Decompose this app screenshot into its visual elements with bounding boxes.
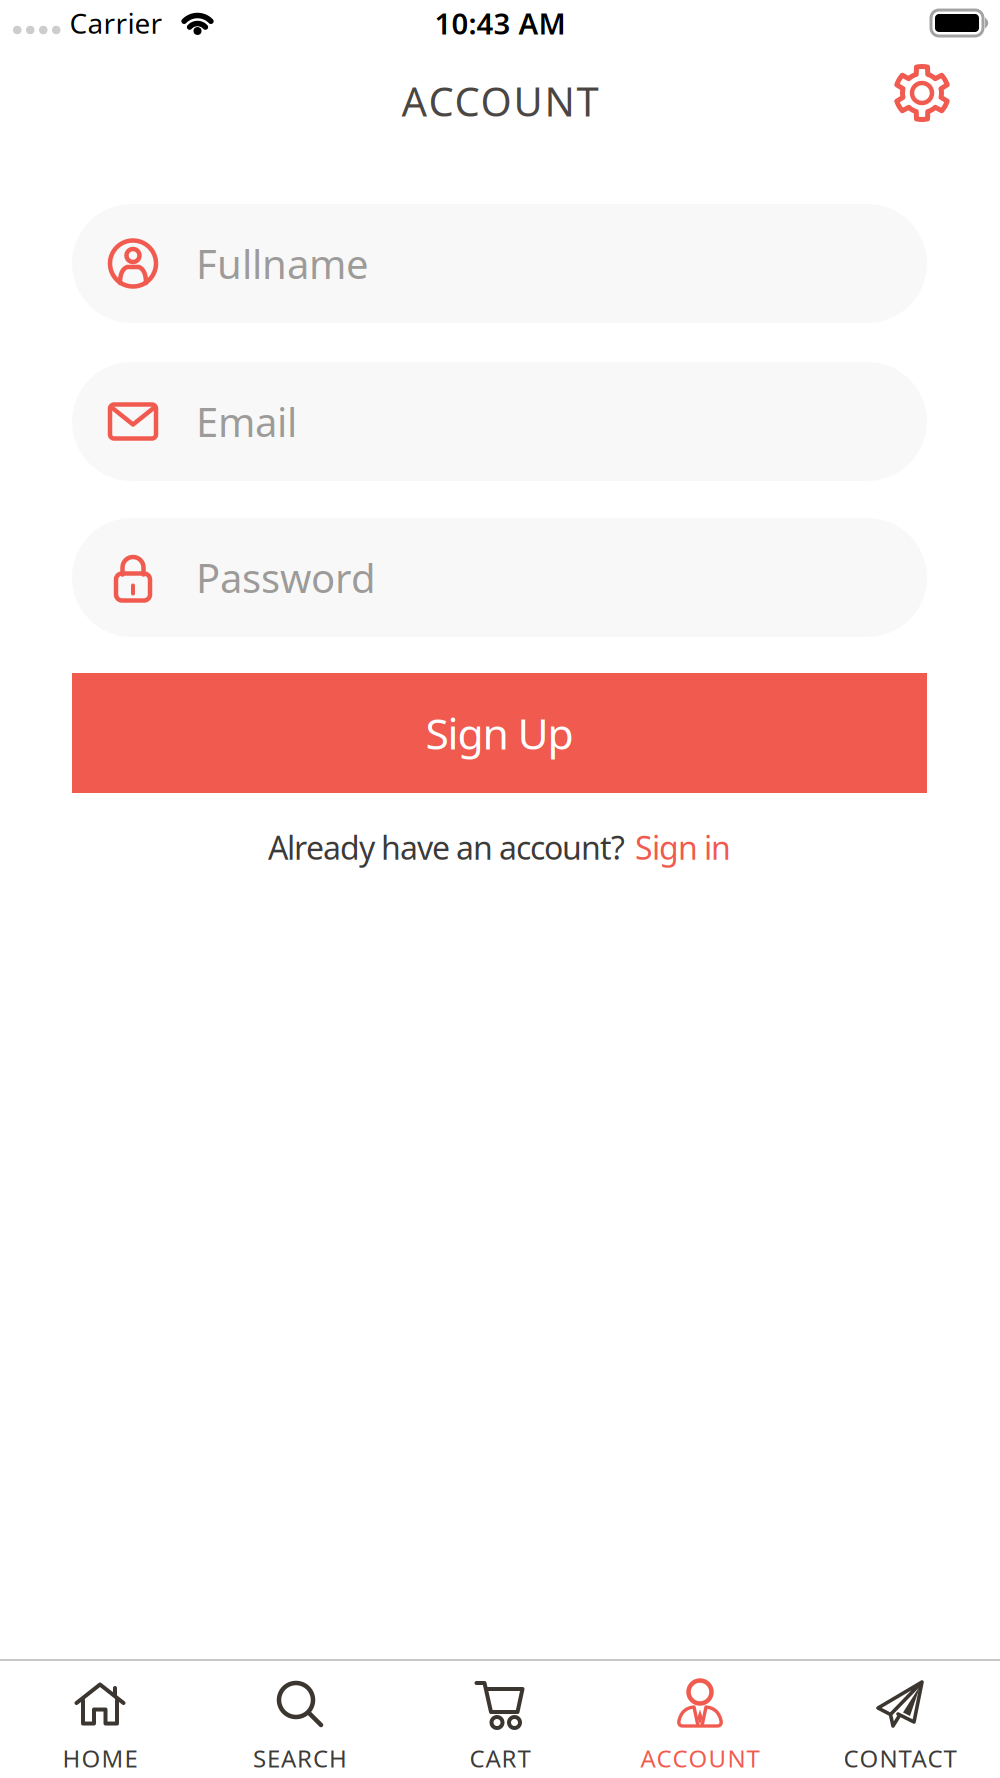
- staticText: Sign Up: [425, 705, 573, 761]
- staticText: Already have an account?: [268, 826, 625, 868]
- staticText: ACCOUNT: [401, 74, 598, 127]
- button[interactable]: Settings: [893, 64, 951, 122]
- staticText: Carrier: [69, 4, 162, 42]
- button[interactable]: SEARCH: [200, 1680, 400, 1774]
- staticText: CONTACT: [843, 1742, 956, 1774]
- staticText: SEARCH: [253, 1742, 347, 1774]
- staticText: Email: [196, 395, 297, 448]
- button[interactable]: CART: [400, 1680, 600, 1774]
- staticText: Fullname: [196, 237, 369, 290]
- button[interactable]: HOME: [0, 1680, 200, 1774]
- button[interactable]: CONTACT: [800, 1680, 1000, 1774]
- button[interactable]: Sign Up: [72, 673, 927, 793]
- staticText: ACCOUNT: [640, 1742, 759, 1774]
- staticText: HOME: [62, 1742, 137, 1774]
- staticText: Sign in: [635, 826, 731, 868]
- staticText: 10:43 AM: [434, 3, 565, 42]
- staticText: CART: [469, 1742, 530, 1774]
- button[interactable]: ACCOUNT: [600, 1680, 800, 1774]
- staticText: Password: [196, 551, 376, 604]
- button[interactable]: Sign in: [635, 826, 731, 868]
